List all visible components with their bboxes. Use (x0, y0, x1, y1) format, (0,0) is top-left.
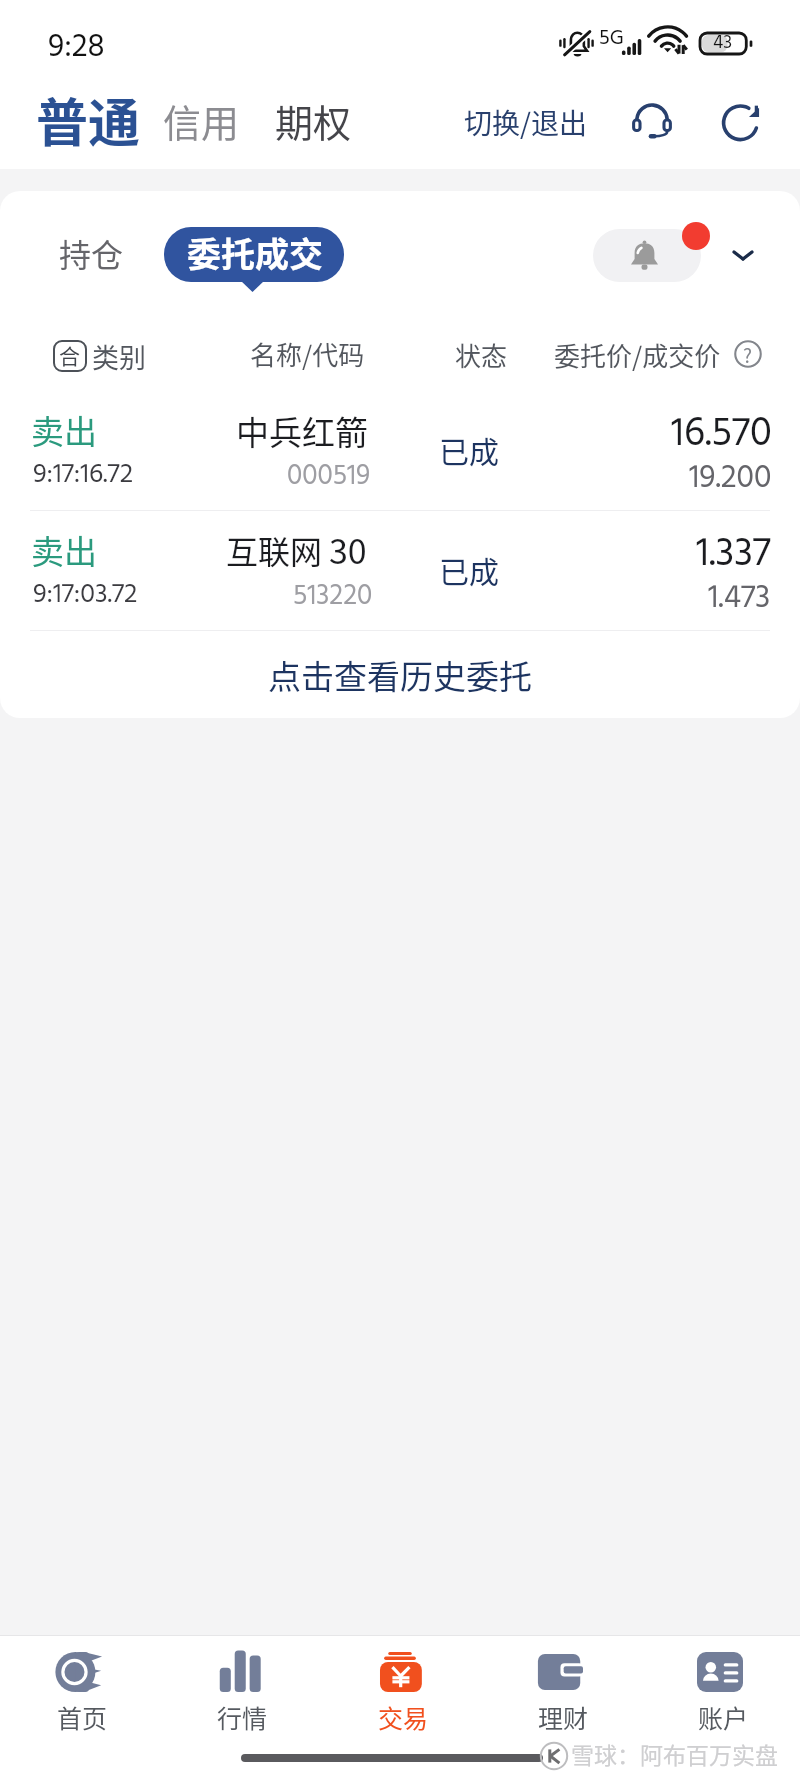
staticText: 1.473 (708, 573, 771, 624)
staticText: 普通 (36, 82, 141, 157)
other: Help (735, 341, 761, 367)
staticText: 行情 (217, 1699, 268, 1735)
staticText: 9:17:16.72 (33, 454, 134, 497)
staticText: 类别 (92, 337, 146, 376)
button[interactable] (48, 334, 158, 376)
staticText: 信用 (163, 93, 240, 148)
button[interactable] (500, 1645, 620, 1741)
button[interactable] (50, 232, 132, 278)
staticText: 首页 (57, 1699, 108, 1735)
staticText: 19.200 (689, 453, 772, 504)
button[interactable] (158, 92, 242, 144)
button[interactable] (0, 396, 800, 510)
staticText: 卖出 (31, 406, 97, 454)
staticText: 5G (599, 22, 624, 56)
staticText: 委托价/成交价 (554, 336, 721, 374)
staticText: 互联网 (226, 527, 323, 573)
staticText: 1.337 (696, 523, 771, 587)
staticText: ? (743, 341, 753, 367)
button[interactable]: Customer service (628, 98, 676, 146)
staticText: 9:28 (48, 22, 105, 73)
staticText: 30 (329, 525, 367, 574)
button[interactable]: Expand (724, 236, 762, 274)
staticText: 雪球：阿布百万实盘 (571, 1737, 778, 1770)
staticText: 已成 (439, 428, 499, 471)
staticText: 已成 (439, 548, 499, 591)
button[interactable] (548, 334, 768, 376)
button[interactable] (20, 1645, 140, 1741)
button[interactable]: Notifications (593, 229, 701, 282)
button[interactable] (270, 92, 354, 144)
staticText: 513220 (293, 574, 373, 619)
staticText: 43 (713, 28, 733, 58)
staticText: 理财 (538, 1699, 589, 1735)
staticText: 持仓 (59, 230, 124, 276)
button[interactable]: Refresh (720, 100, 764, 144)
staticText: 合 (59, 340, 80, 370)
staticText: 中兵红箭 (236, 407, 368, 455)
button[interactable] (660, 1645, 780, 1741)
button[interactable] (340, 1645, 460, 1741)
staticText: 交易 (378, 1699, 429, 1735)
staticText: 16.570 (671, 403, 772, 467)
staticText: 点击查看历史委托 (268, 651, 532, 699)
staticText: 卖出 (31, 526, 97, 574)
button[interactable] (30, 88, 148, 154)
staticText: 9:17:03.72 (33, 574, 138, 617)
staticText: 名称/代码 (250, 335, 365, 373)
staticText: 000519 (287, 454, 371, 499)
staticText: 账户 (698, 1699, 749, 1735)
staticText: 委托成交 (187, 228, 323, 277)
button[interactable] (0, 632, 800, 718)
button[interactable] (460, 96, 592, 142)
button[interactable] (164, 227, 344, 282)
button[interactable] (180, 1645, 300, 1741)
button[interactable] (0, 516, 800, 630)
staticText: 切换/退出 (464, 102, 587, 143)
staticText: 期权 (275, 93, 352, 148)
staticText: 状态 (455, 336, 508, 374)
